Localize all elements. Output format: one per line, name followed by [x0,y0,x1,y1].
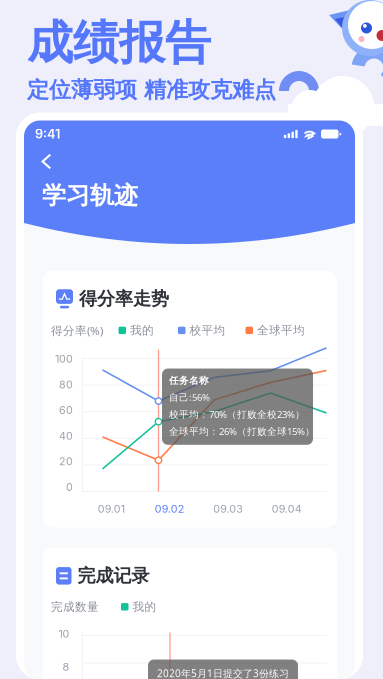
staticText: 校平均 [189,323,225,338]
staticText: 9:41 [35,126,60,142]
staticText: 任务名称 [169,374,209,387]
staticText: 10 [58,627,69,640]
staticText: 20 [59,455,73,468]
staticText: 0 [66,481,73,493]
staticText: 40 [59,429,73,442]
staticText: 09.03 [213,502,243,515]
staticText: 完成记录 [77,564,149,587]
staticText: 09.01 [98,502,125,515]
staticText: 2020年5月1日提交了3份练习 [157,666,289,679]
staticText: 09.04 [272,502,302,515]
staticText: 成绩报告 [27,14,211,72]
staticText: 得分率走势 [79,287,169,310]
staticText: 60 [59,404,73,417]
staticText: 完成数量 [51,599,99,614]
button[interactable]: Back [24,120,68,179]
staticText: 全球平均：26%（打败全球15%） [169,425,315,438]
staticText: 我的 [132,599,156,614]
staticText: 我的 [130,323,154,338]
staticText: 自己:56% [169,391,210,404]
staticText: 80 [59,378,73,391]
staticText: 得分率(%) [51,322,103,338]
staticText: 100 [55,352,73,365]
staticText: 全球平均 [257,323,305,338]
staticText: 定位薄弱项 精准攻克难点 [27,76,276,104]
staticText: 09.02 [155,502,185,515]
staticText: 校平均：70%（打败全校23%） [169,408,305,421]
staticText: 8 [62,660,69,673]
staticText: 学习轨迹 [42,180,138,211]
